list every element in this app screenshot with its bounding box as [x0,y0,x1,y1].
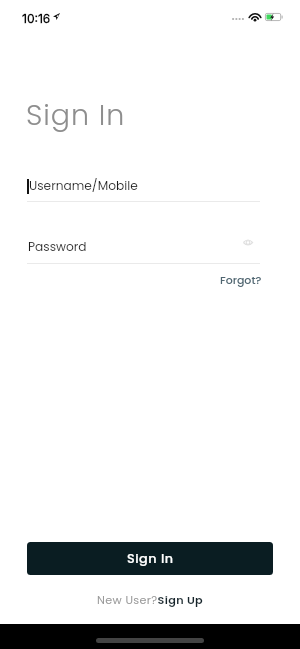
button[interactable]: Sign In [27,542,273,575]
button[interactable]: New User?Sign Up [92,587,209,613]
staticText: 10:16 [22,11,51,26]
staticText: Sign In [26,95,126,135]
button[interactable]: Password [27,230,260,261]
button[interactable]: Forgot? [213,269,269,290]
button[interactable]: Show password [237,232,258,253]
button[interactable]: Username/Mobile [27,169,260,201]
staticText: Password [28,238,87,255]
staticText: Sign In [127,550,174,568]
staticText: Forgot? [220,272,262,287]
staticText: Username/Mobile [29,177,138,194]
